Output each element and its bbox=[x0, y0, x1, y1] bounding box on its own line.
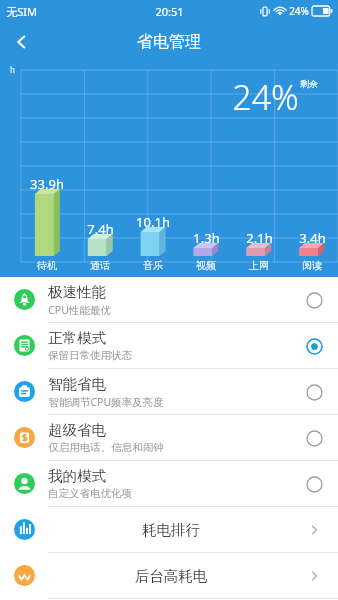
staticText: 智能省电 bbox=[48, 375, 106, 393]
staticText: 通话 bbox=[90, 259, 110, 272]
staticText: 待机 bbox=[37, 259, 57, 272]
staticText: 耗电排行 bbox=[48, 521, 294, 539]
staticText: 后台高耗电 bbox=[48, 567, 294, 585]
staticText: 剩余 bbox=[300, 78, 318, 89]
staticText: 上网 bbox=[249, 259, 269, 272]
staticText: 20:51 bbox=[155, 4, 184, 19]
staticText: 我的模式 bbox=[48, 467, 106, 485]
staticText: 10.1h bbox=[136, 213, 170, 231]
button[interactable]: 后台高耗电 bbox=[0, 553, 338, 598]
staticText: 极速性能 bbox=[48, 283, 106, 301]
staticText: 保留日常使用状态 bbox=[48, 349, 132, 362]
staticText: 1.3h bbox=[193, 229, 220, 247]
staticText: 7.4h bbox=[87, 220, 114, 238]
staticText: 33.9h bbox=[30, 175, 64, 193]
staticText: 2.1h bbox=[246, 229, 273, 247]
staticText: 阅读 bbox=[302, 259, 322, 272]
button[interactable]: Back bbox=[0, 22, 44, 62]
staticText: 音乐 bbox=[143, 259, 163, 272]
button[interactable]: 正常模式 bbox=[0, 323, 338, 368]
staticText: 24% bbox=[289, 4, 309, 18]
staticText: 正常模式 bbox=[48, 329, 106, 347]
staticText: 3.4h bbox=[299, 229, 326, 247]
staticText: 智能调节CPU频率及亮度 bbox=[48, 395, 164, 409]
button[interactable]: 超级省电 bbox=[0, 415, 338, 460]
staticText: 超级省电 bbox=[48, 421, 106, 439]
button[interactable]: 智能省电 bbox=[0, 369, 338, 414]
staticText: CPU性能最优 bbox=[48, 303, 111, 317]
staticText: 省电管理 bbox=[137, 32, 201, 52]
staticText: 仅启用电话、信息和闹钟 bbox=[48, 441, 164, 454]
button[interactable]: 极速性能 bbox=[0, 277, 338, 322]
staticText: 自定义省电优化项 bbox=[48, 487, 132, 500]
button[interactable]: 耗电排行 bbox=[0, 507, 338, 552]
staticText: 24% bbox=[232, 74, 299, 120]
staticText: h bbox=[10, 64, 15, 75]
staticText: 无SIM bbox=[6, 4, 37, 19]
button[interactable]: 我的模式 bbox=[0, 461, 338, 506]
staticText: 视频 bbox=[196, 259, 216, 272]
